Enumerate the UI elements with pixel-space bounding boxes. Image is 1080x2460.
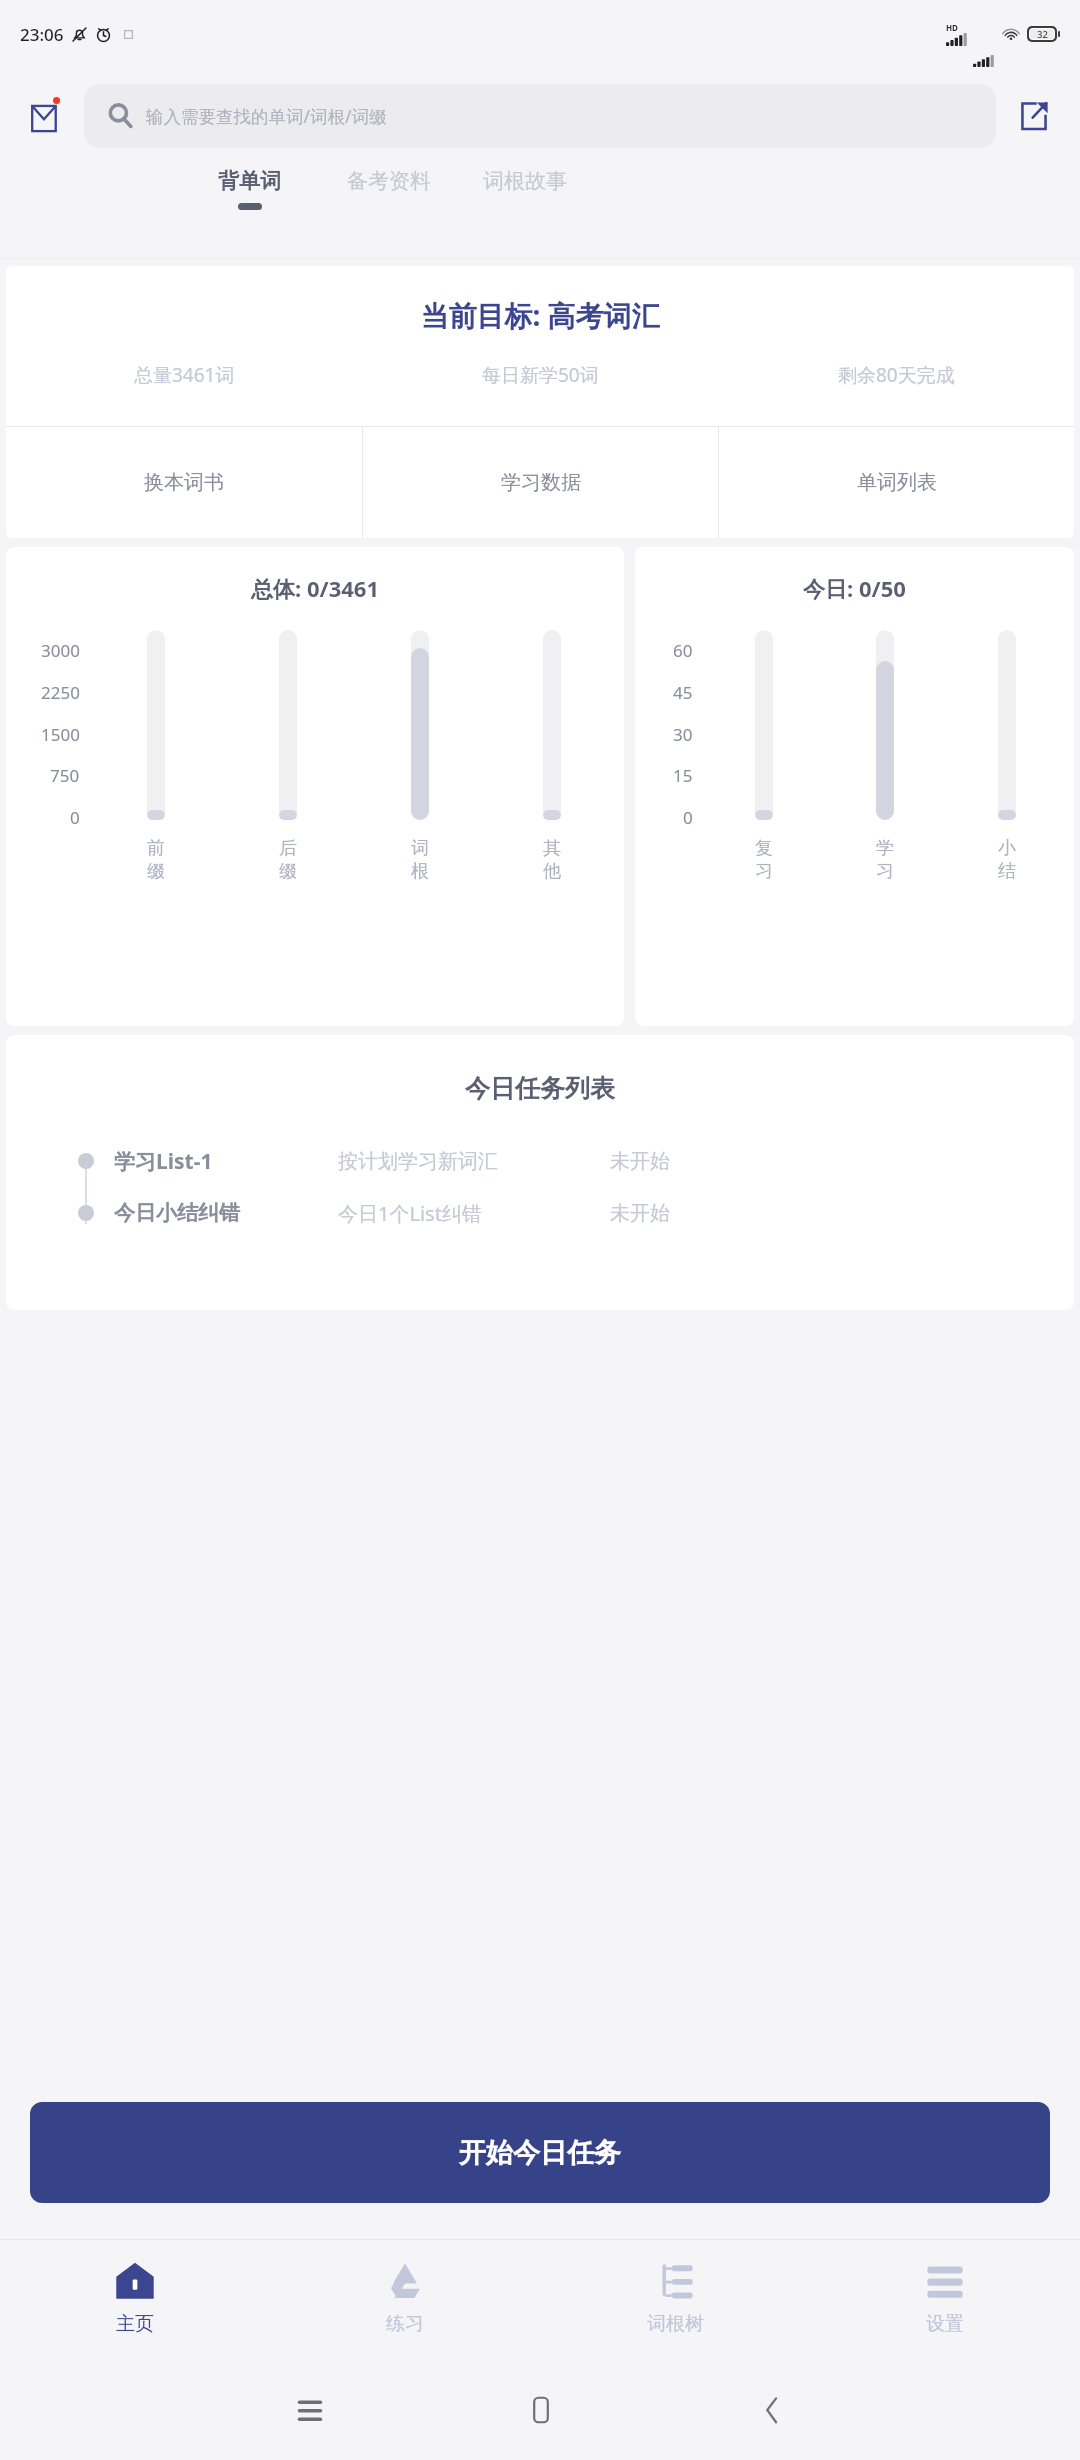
staticText: 词根故事 [483,168,567,194]
staticText: 设置 [926,2312,964,2336]
button[interactable]: 开始今日任务 [30,2102,1050,2203]
staticText: 开始今日任务 [459,2136,621,2170]
staticText: 今日: 0/50 [635,573,1074,603]
staticText: 45 [673,681,693,704]
staticText: 练习 [386,2312,424,2336]
button[interactable]: 练习 [270,2240,540,2360]
staticText: 换本词书 [144,470,224,495]
button[interactable]: 换本词书 [6,427,362,538]
staticText: 0 [683,806,693,829]
button[interactable]: 总体: 0/3461 [6,547,624,1026]
button[interactable]: 今日: 0/50 [635,547,1074,1026]
staticText: 小 结 [998,837,1016,883]
staticText: 背单词 [218,168,281,194]
staticText: 未开始 [610,1149,670,1174]
staticText: 学习数据 [501,470,581,495]
button[interactable]: 备考资料 [341,164,437,207]
staticText: 词 根 [411,837,429,883]
staticText: 剩余80天完成 [838,362,955,388]
staticText: 2250 [41,681,80,704]
button[interactable]: 今日小结纠错 [6,1196,1074,1230]
staticText: 0 [70,806,80,829]
staticText: 前 缀 [147,837,165,883]
staticText: 今日任务列表 [6,1073,1074,1104]
staticText: 23:06 [20,23,64,46]
staticText: 750 [50,764,80,787]
staticText: 今日小结纠错 [114,1200,240,1226]
staticText: 今日1个List纠错 [338,1200,482,1227]
button[interactable]: Messages [26,93,72,139]
staticText: 输入需要查找的单词/词根/词缀 [146,104,387,128]
staticText: 30 [673,723,693,746]
button[interactable]: 词根树 [540,2240,810,2360]
staticText: 学习List-1 [114,1147,213,1176]
staticText: 3000 [41,639,80,662]
button[interactable]: 设置 [810,2240,1080,2360]
staticText: 学 习 [876,837,894,883]
staticText: 后 缀 [279,837,297,883]
staticText: 总量3461词 [134,362,235,388]
staticText: 当前目标: 高考词汇 [6,296,1074,334]
staticText: 15 [673,764,693,787]
staticText: 未开始 [610,1201,670,1226]
button[interactable]: 单词列表 [719,427,1074,538]
button[interactable]: Share [1012,94,1056,138]
button[interactable]: 主页 [0,2240,270,2360]
button[interactable]: 学习数据 [363,427,718,538]
staticText: 单词列表 [857,470,937,495]
staticText: 备考资料 [347,168,431,194]
staticText: 每日新学50词 [482,362,599,388]
button[interactable]: 输入需要查找的单词/词根/词缀 [84,84,996,148]
staticText: 1500 [41,723,80,746]
staticText: 主页 [116,2312,154,2336]
staticText: 复 习 [755,837,773,883]
staticText: 60 [673,639,693,662]
button[interactable]: 学习List-1 [6,1144,1074,1178]
button[interactable]: 背单词 [212,164,287,214]
staticText: 总体: 0/3461 [6,573,624,603]
staticText: 32 [1037,28,1048,40]
staticText: 按计划学习新词汇 [338,1149,498,1174]
staticText: 其 他 [543,837,561,883]
staticText: HD [946,22,958,33]
staticText: 词根树 [647,2312,704,2336]
button[interactable]: 词根故事 [477,164,573,207]
